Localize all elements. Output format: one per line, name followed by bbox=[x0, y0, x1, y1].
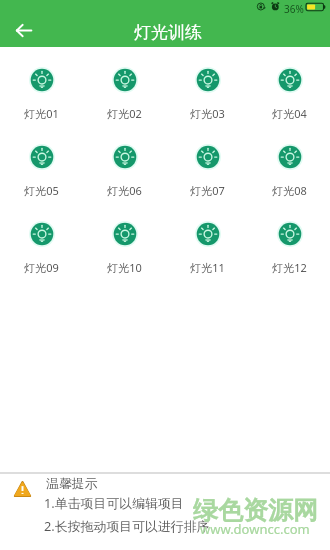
button[interactable]: 灯光11 bbox=[166, 221, 249, 275]
staticText: 温馨提示 bbox=[46, 476, 98, 492]
staticText: 灯光10 bbox=[107, 260, 142, 275]
staticText: 灯光09 bbox=[24, 260, 59, 275]
button[interactable]: 灯光06 bbox=[83, 144, 166, 198]
staticText: 灯光04 bbox=[272, 106, 307, 121]
button[interactable]: Back bbox=[8, 15, 39, 46]
staticText: 灯光08 bbox=[272, 183, 307, 198]
staticText: 36% bbox=[284, 2, 304, 16]
staticText: 1.单击项目可以编辑项目 bbox=[44, 494, 184, 512]
staticText: 绿色资源网 bbox=[193, 495, 318, 526]
button[interactable]: 灯光05 bbox=[0, 144, 83, 198]
button[interactable]: 灯光08 bbox=[249, 144, 330, 198]
staticText: 灯光01 bbox=[24, 106, 59, 121]
staticText: 灯光03 bbox=[190, 106, 225, 121]
staticText: www.downcc.com bbox=[200, 520, 310, 538]
button[interactable]: 灯光03 bbox=[166, 67, 249, 121]
button[interactable]: 灯光07 bbox=[166, 144, 249, 198]
button[interactable]: 灯光12 bbox=[249, 221, 330, 275]
staticText: 灯光05 bbox=[24, 183, 59, 198]
staticText: 灯光07 bbox=[190, 183, 225, 198]
staticText: 灯光训练 bbox=[134, 22, 202, 43]
button[interactable]: 灯光10 bbox=[83, 221, 166, 275]
staticText: 灯光12 bbox=[272, 260, 307, 275]
button[interactable]: 灯光02 bbox=[83, 67, 166, 121]
staticText: 2.长按拖动项目可以进行排序 bbox=[44, 517, 210, 535]
staticText: 灯光11 bbox=[190, 260, 225, 275]
staticText: 灯光06 bbox=[107, 183, 142, 198]
button[interactable]: 灯光04 bbox=[249, 67, 330, 121]
staticText: 灯光02 bbox=[107, 106, 142, 121]
button[interactable]: 灯光01 bbox=[0, 67, 83, 121]
button[interactable]: 灯光09 bbox=[0, 221, 83, 275]
